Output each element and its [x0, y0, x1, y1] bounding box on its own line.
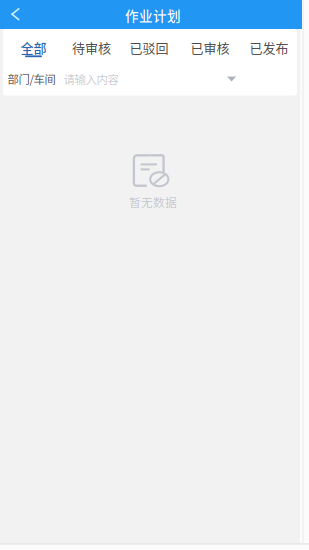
staticText: 暂无数据 [129, 193, 177, 210]
button[interactable]: 已审核 [179, 29, 241, 58]
button[interactable]: 待审核 [64, 29, 119, 58]
staticText: 全部 [20, 38, 46, 57]
button[interactable]: Back [1, 0, 31, 29]
staticText: 已发布 [249, 38, 288, 57]
staticText: 部门/车间 [7, 71, 55, 87]
button[interactable]: 部门/车间 [3, 67, 297, 95]
staticText: 已审核 [190, 38, 229, 57]
staticText: 请输入内容 [63, 71, 118, 87]
staticText: 待审核 [72, 38, 111, 57]
staticText: 已驳回 [129, 38, 168, 57]
button[interactable]: 全部 [3, 29, 64, 58]
staticText: 作业计划 [125, 5, 181, 25]
button[interactable]: 已驳回 [119, 29, 179, 58]
button[interactable]: 已发布 [241, 29, 297, 58]
